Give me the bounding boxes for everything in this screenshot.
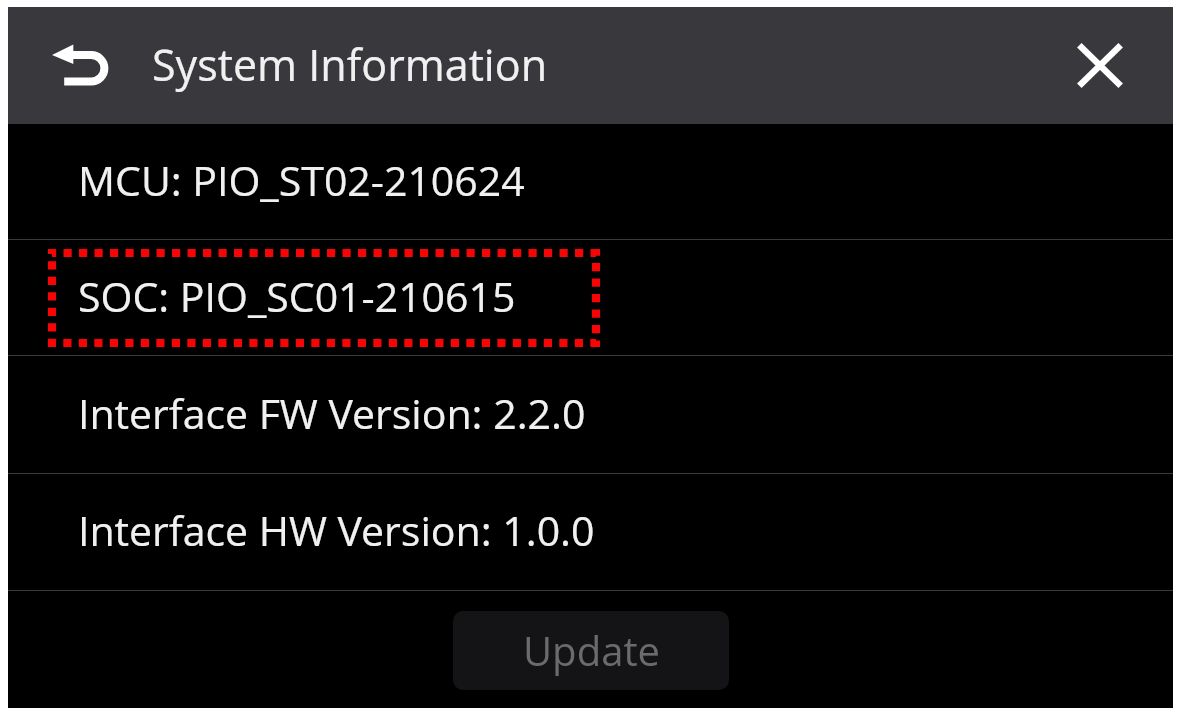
staticText: MCU: PIO_ST02-210624 [78, 152, 525, 208]
button[interactable]: Interface HW Version: 1.0.0 [8, 474, 1173, 590]
staticText: Interface FW Version: 2.2.0 [78, 385, 586, 441]
button[interactable]: Update [453, 611, 729, 690]
button[interactable]: Close [1065, 30, 1135, 100]
staticText: Update [523, 623, 660, 677]
staticText: SOC: PIO_SC01-210615 [78, 268, 516, 324]
button[interactable]: Interface FW Version: 2.2.0 [8, 356, 1173, 473]
button[interactable]: SOC: PIO_SC01-210615 [8, 240, 1173, 355]
staticText: Interface HW Version: 1.0.0 [78, 502, 595, 558]
button[interactable]: Back [44, 30, 116, 100]
staticText: System Information [152, 35, 548, 94]
button[interactable]: MCU: PIO_ST02-210624 [8, 124, 1173, 239]
